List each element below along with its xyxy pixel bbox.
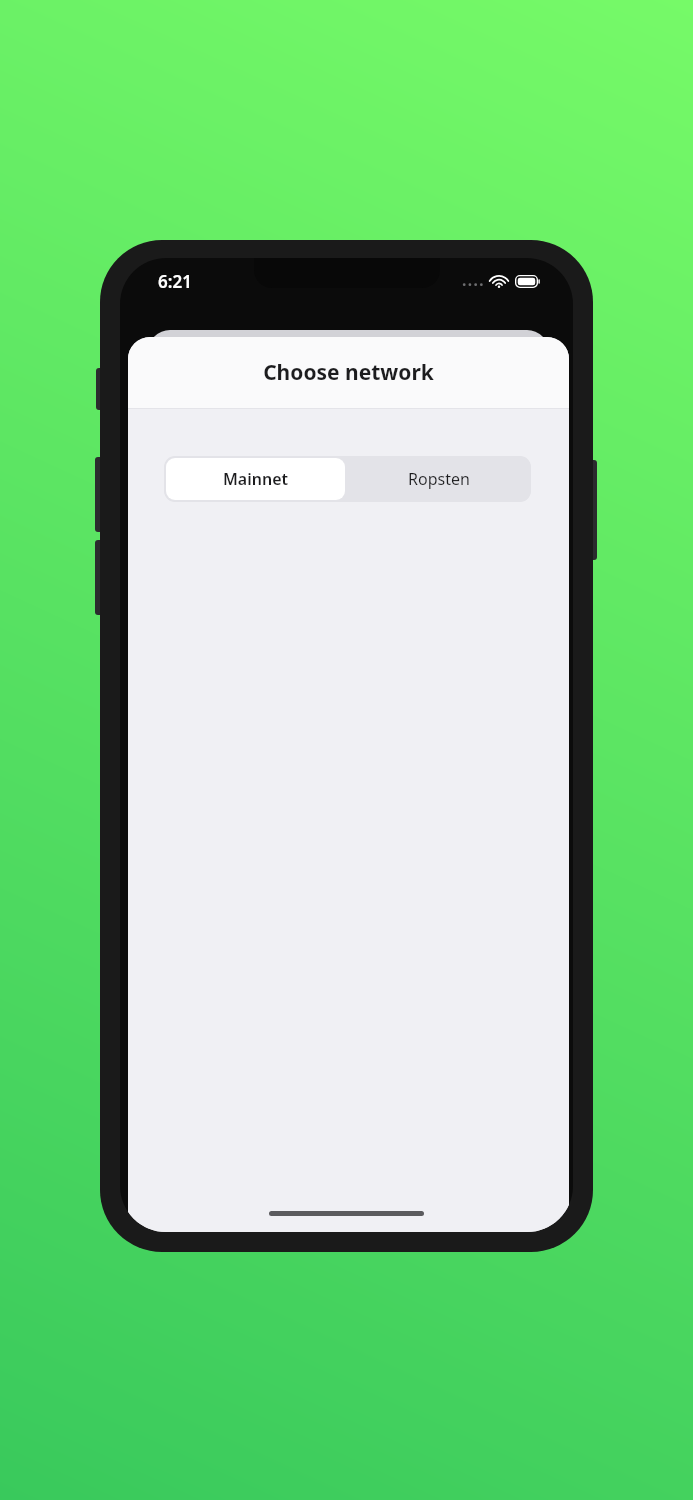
staticText: Choose network: [263, 358, 434, 387]
staticText: 6:21: [158, 270, 192, 293]
button[interactable]: Mainnet: [166, 458, 345, 500]
staticText: Ropsten: [408, 468, 470, 490]
staticText: Mainnet: [223, 468, 289, 490]
button[interactable]: Ropsten: [347, 456, 531, 502]
